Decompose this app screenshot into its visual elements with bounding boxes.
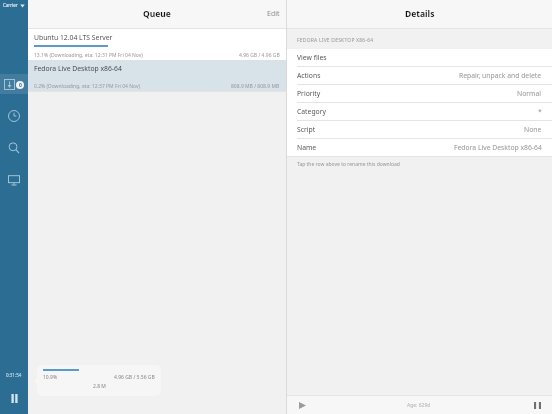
staticText: Queue — [143, 8, 171, 20]
staticText: View files — [297, 53, 327, 62]
staticText: Fedora Live Desktop x86-64 — [454, 143, 542, 152]
staticText: Carrier — [3, 2, 18, 8]
staticText: Details — [405, 8, 435, 20]
button[interactable]: Server — [0, 170, 28, 190]
staticText: FEDORA LIVE DESKTOP X86-64 — [297, 37, 374, 44]
staticText: None — [524, 125, 542, 134]
button[interactable]: Ubuntu 12.04 LTS Server — [28, 29, 286, 60]
staticText: Fedora Live Desktop x86-64 — [34, 64, 122, 73]
button[interactable]: Fedora Live Desktop x86-64 — [28, 60, 286, 91]
staticText: 4.96 GB / 5.56 GB — [114, 374, 155, 381]
button[interactable]: Downloads — [0, 74, 28, 94]
staticText: Normal — [517, 89, 542, 98]
staticText: Script — [297, 125, 316, 134]
button[interactable]: Search — [0, 138, 28, 158]
staticText: Name — [297, 143, 317, 152]
button[interactable]: Script — [287, 121, 552, 139]
button[interactable]: Name — [287, 139, 552, 157]
staticText: Actions — [297, 71, 321, 80]
button[interactable]: Pause all — [4, 388, 24, 408]
button[interactable]: History — [0, 106, 28, 126]
staticText: Ubuntu 12.04 LTS Server — [34, 33, 113, 42]
staticText: 0.2% (Downloading, eta: 12:37 PM Fri 04 … — [34, 83, 140, 90]
button[interactable]: 10.9% — [37, 365, 161, 396]
staticText: 13.1% (Downloading, eta: 12:31 PM Fri 04… — [34, 52, 143, 59]
button[interactable]: Priority — [287, 85, 552, 103]
staticText: Category — [297, 107, 326, 116]
staticText: * — [538, 107, 542, 116]
staticText: 0 — [19, 82, 22, 89]
staticText: 4.96 GB / 4.96 GB — [239, 52, 280, 59]
staticText: 10.9% — [43, 374, 58, 381]
staticText: Repair, unpack and delete — [459, 71, 542, 80]
staticText: 2.8 M — [93, 383, 106, 390]
staticText: Edit — [267, 9, 280, 19]
staticText: Age: 629d — [407, 402, 431, 409]
staticText: 808.9 MB / 808.9 MB — [231, 83, 280, 90]
button[interactable]: Resume — [295, 398, 309, 412]
staticText: 0:31:54 — [6, 372, 22, 378]
button[interactable]: Edit — [267, 9, 280, 19]
staticText: Tap the row above to rename this downloa… — [297, 161, 400, 168]
staticText: Priority — [297, 89, 321, 98]
button[interactable]: Pause — [530, 398, 544, 412]
button[interactable]: Category — [287, 103, 552, 121]
button[interactable]: Actions — [287, 67, 552, 85]
button[interactable]: View files — [287, 49, 552, 67]
